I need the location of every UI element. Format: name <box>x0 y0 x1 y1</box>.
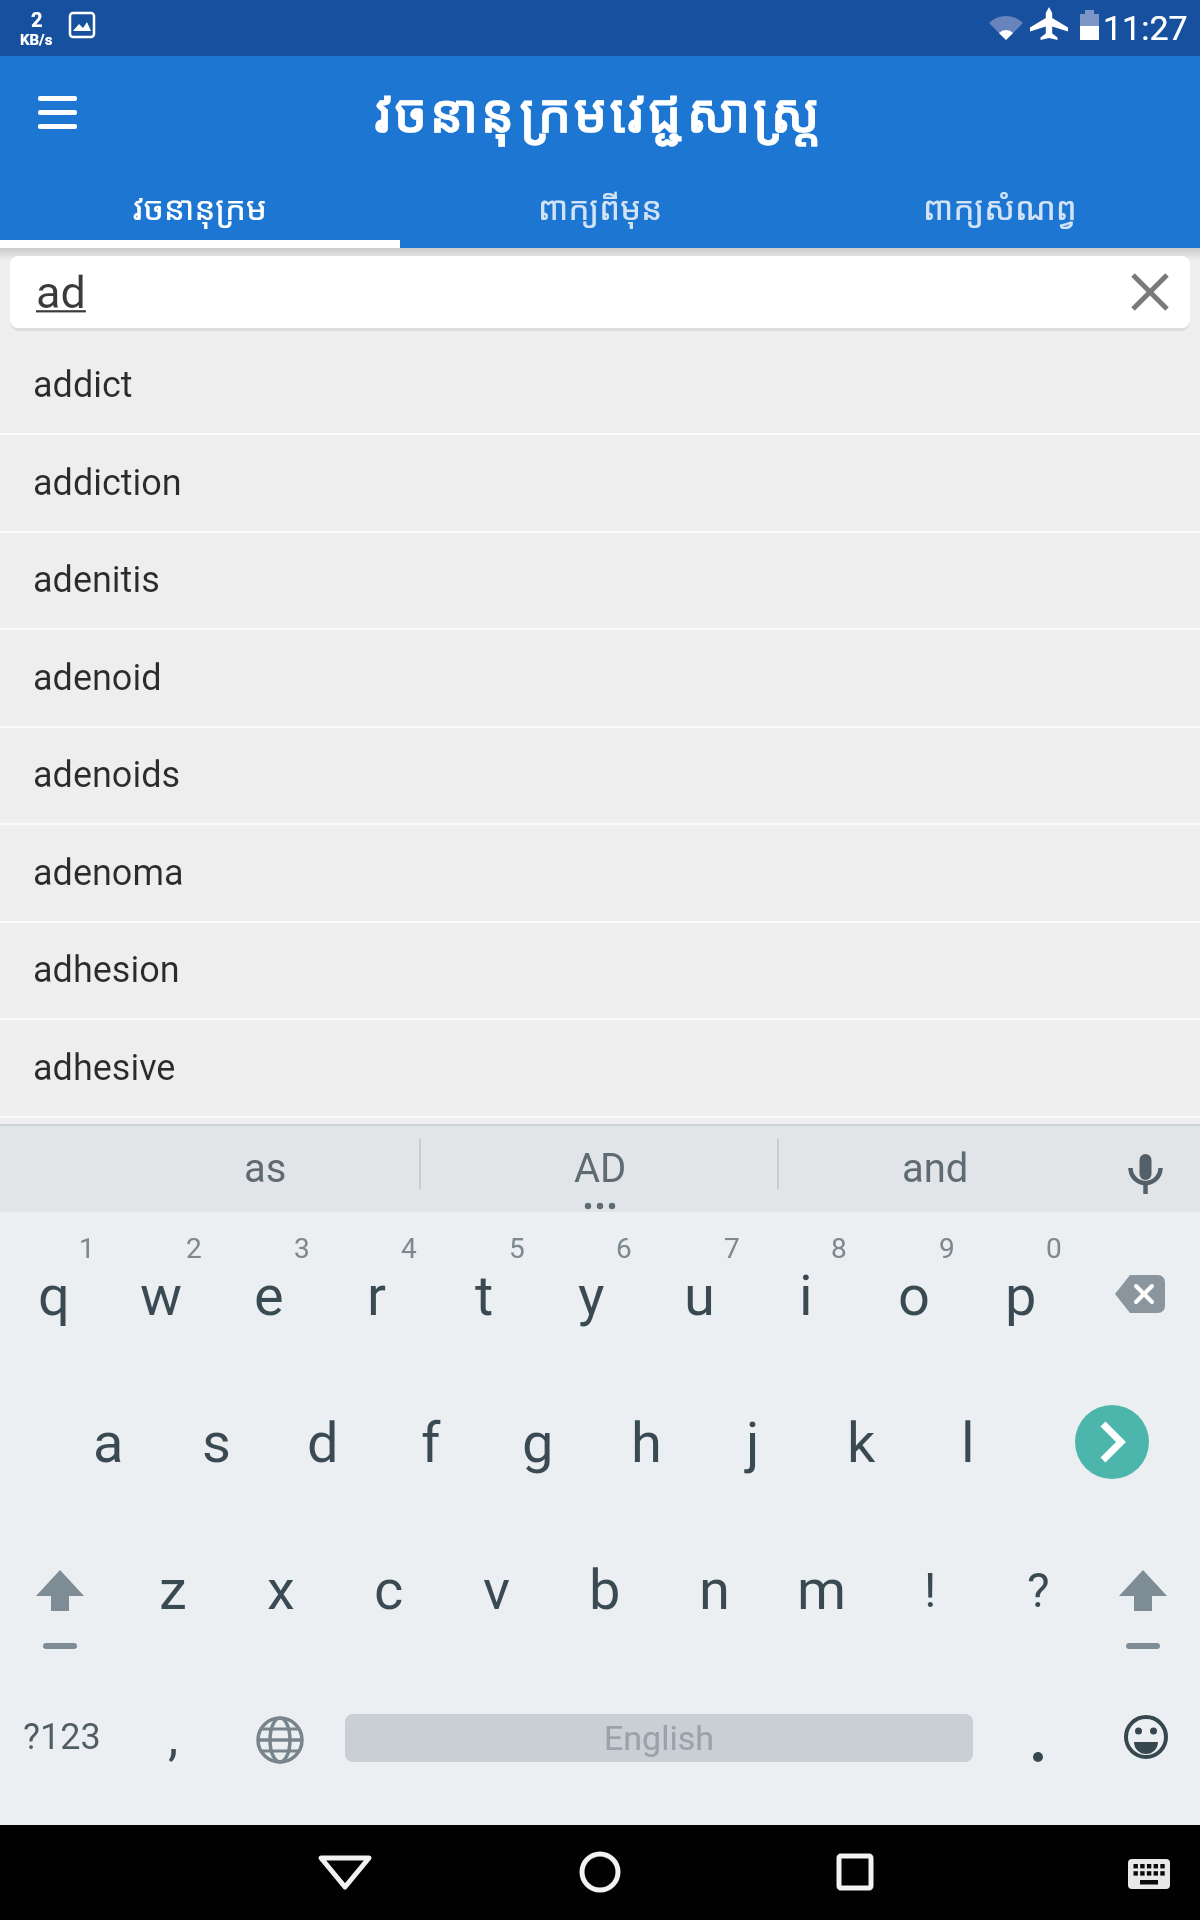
button[interactable]: adenoma <box>0 825 1200 921</box>
staticText: adhesive <box>33 1047 176 1089</box>
button[interactable]: ad <box>10 256 1190 328</box>
button[interactable]: m <box>769 1517 875 1663</box>
button[interactable]: t <box>431 1223 537 1369</box>
button[interactable]: addict <box>0 337 1200 433</box>
staticText: as <box>244 1145 287 1192</box>
staticText: p <box>1005 1263 1037 1329</box>
button[interactable]: i <box>753 1223 859 1369</box>
button[interactable]: ! <box>877 1517 983 1663</box>
button[interactable]: p <box>968 1223 1074 1369</box>
staticText: 3 <box>294 1232 310 1265</box>
button[interactable]: addiction <box>0 435 1200 531</box>
staticText: 1 <box>79 1232 95 1265</box>
staticText: e <box>254 1263 284 1329</box>
staticText: b <box>589 1557 621 1623</box>
staticText: o <box>898 1263 930 1329</box>
button[interactable] <box>1100 1128 1190 1208</box>
staticText: adhesion <box>33 949 180 991</box>
staticText: k <box>847 1410 876 1476</box>
button[interactable]: j <box>700 1370 806 1516</box>
staticText: a <box>93 1410 124 1476</box>
staticText: , <box>168 1707 179 1768</box>
staticText: ! <box>924 1562 937 1618</box>
button[interactable] <box>5 1517 115 1663</box>
button[interactable]: r <box>323 1223 429 1369</box>
button[interactable]: g <box>485 1370 591 1516</box>
button[interactable]: , <box>123 1664 223 1810</box>
button[interactable]: s <box>163 1370 269 1516</box>
staticText: 8 <box>831 1232 847 1265</box>
button[interactable]: as <box>110 1128 420 1208</box>
button[interactable]: w <box>108 1223 214 1369</box>
button[interactable] <box>1118 260 1184 326</box>
button[interactable]: q <box>1 1223 107 1369</box>
staticText: s <box>202 1410 231 1476</box>
staticText: x <box>267 1557 295 1623</box>
staticText: 0 <box>1046 1232 1062 1265</box>
button[interactable]: f <box>378 1370 484 1516</box>
staticText: 5 <box>509 1232 525 1265</box>
button[interactable]: ពាក្យពីមុន <box>400 166 800 248</box>
button[interactable]: l <box>915 1370 1021 1516</box>
button[interactable] <box>14 80 104 150</box>
button[interactable]: and <box>780 1128 1090 1208</box>
button[interactable]: adhesion <box>0 922 1200 1018</box>
button[interactable]: b <box>552 1517 658 1663</box>
staticText: v <box>483 1557 511 1623</box>
staticText: ?123 <box>23 1716 101 1758</box>
button[interactable]: x <box>228 1517 334 1663</box>
button[interactable] <box>805 1830 905 1916</box>
staticText: 2 <box>31 8 43 31</box>
staticText: adenoma <box>33 852 184 894</box>
button[interactable]: ពាក្យសំណព្វ <box>800 166 1200 248</box>
staticText: r <box>367 1263 386 1329</box>
staticText: ពាក្យសំណព្វ <box>923 185 1077 230</box>
staticText: ad <box>36 266 86 319</box>
staticText: English <box>604 1718 715 1758</box>
staticText: w <box>140 1263 183 1329</box>
button[interactable]: n <box>661 1517 767 1663</box>
button[interactable]: ? <box>985 1517 1091 1663</box>
button[interactable]: adenitis <box>0 532 1200 628</box>
button[interactable]: adhesive <box>0 1020 1200 1116</box>
button[interactable]: វចនានុក្រម <box>0 166 400 248</box>
staticText: d <box>307 1410 339 1476</box>
button[interactable]: y <box>538 1223 644 1369</box>
button[interactable]: v <box>444 1517 550 1663</box>
button[interactable] <box>1100 1830 1196 1916</box>
button[interactable]: k <box>808 1370 914 1516</box>
button[interactable]: ?123 <box>12 1664 112 1810</box>
button[interactable] <box>1096 1664 1196 1810</box>
staticText: AD <box>574 1145 627 1192</box>
button[interactable]: a <box>55 1370 161 1516</box>
button[interactable] <box>1085 1517 1195 1663</box>
staticText: z <box>159 1557 187 1623</box>
button[interactable]: c <box>336 1517 442 1663</box>
button[interactable] <box>1090 1223 1196 1369</box>
staticText: q <box>38 1263 70 1329</box>
button[interactable] <box>988 1664 1088 1810</box>
button[interactable] <box>1075 1405 1149 1479</box>
button[interactable]: English <box>345 1714 973 1762</box>
button[interactable] <box>230 1664 330 1810</box>
staticText: i <box>799 1263 813 1329</box>
staticText: n <box>699 1557 730 1623</box>
staticText: addict <box>33 364 133 406</box>
button[interactable]: adenoids <box>0 727 1200 823</box>
button[interactable]: e <box>216 1223 322 1369</box>
staticText: 11:27 <box>1103 8 1188 48</box>
button[interactable]: u <box>646 1223 752 1369</box>
button[interactable]: d <box>270 1370 376 1516</box>
button[interactable]: adenoid <box>0 630 1200 726</box>
staticText: adenitis <box>33 559 160 601</box>
button[interactable] <box>550 1830 650 1916</box>
button[interactable]: h <box>593 1370 699 1516</box>
button[interactable]: z <box>120 1517 226 1663</box>
staticText: c <box>374 1557 404 1623</box>
button[interactable]: o <box>861 1223 967 1369</box>
staticText: m <box>797 1557 847 1623</box>
staticText: វចនានុក្រមវេជ្ជសាស្ត្រ <box>375 76 826 147</box>
button[interactable] <box>295 1830 395 1916</box>
button[interactable]: AD <box>445 1128 755 1208</box>
staticText: ពាក្យពីមុន <box>538 185 663 230</box>
